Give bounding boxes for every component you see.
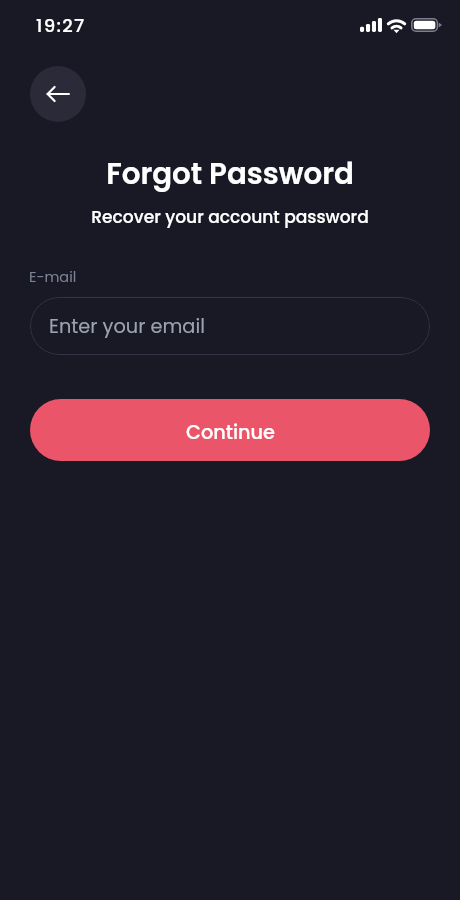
staticText: Recover your account password bbox=[0, 205, 460, 229]
staticText: 19:27 bbox=[36, 13, 86, 38]
staticText: Enter your email bbox=[49, 313, 205, 340]
staticText: Forgot Password bbox=[0, 153, 460, 194]
button[interactable]: Back bbox=[30, 66, 86, 122]
staticText: Continue bbox=[186, 419, 275, 446]
button[interactable]: Enter your email bbox=[30, 297, 430, 355]
button[interactable]: Continue bbox=[30, 399, 430, 461]
staticText: E-mail bbox=[29, 267, 77, 287]
